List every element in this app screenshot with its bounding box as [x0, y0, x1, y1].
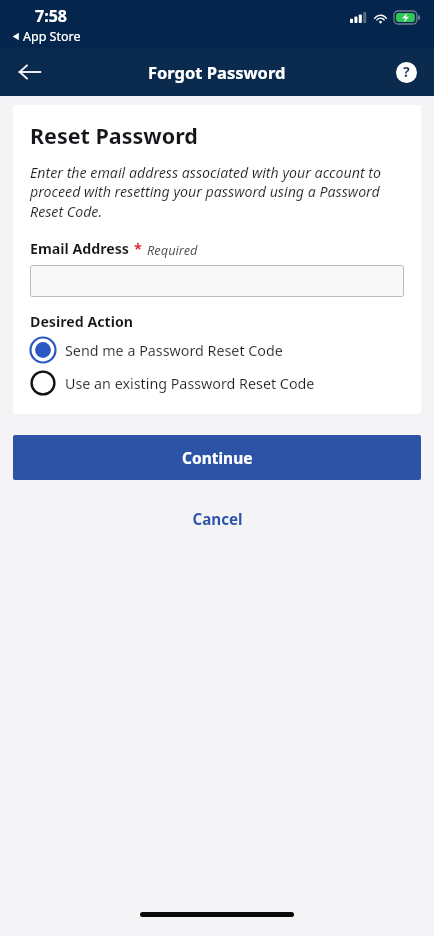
staticText: Enter the email address associated with … [30, 163, 404, 221]
staticText: * [134, 238, 142, 258]
staticText: Email Address [30, 239, 129, 258]
staticText: Cancel [192, 509, 243, 530]
button[interactable]: Help [386, 52, 426, 92]
staticText: Use an existing Password Reset Code [65, 374, 315, 393]
staticText: 7:58 [35, 5, 67, 27]
staticText: Send me a Password Reset Code [65, 341, 283, 360]
staticText: Reset Password [30, 121, 198, 150]
staticText: ? [403, 62, 410, 81]
button[interactable]: Email Address input [30, 265, 404, 297]
button[interactable]: Back [8, 50, 52, 94]
button[interactable]: Continue [13, 435, 421, 480]
staticText: Continue [182, 447, 253, 468]
button[interactable]: Use an existing Password Reset Code [30, 370, 404, 396]
staticText: App Store [23, 28, 81, 45]
staticText: Required [147, 241, 198, 258]
staticText: Desired Action [30, 312, 134, 331]
button[interactable]: Send me a Password Reset Code [30, 337, 404, 363]
button[interactable]: Cancel [168, 505, 267, 534]
staticText: Forgot Password [148, 61, 286, 83]
